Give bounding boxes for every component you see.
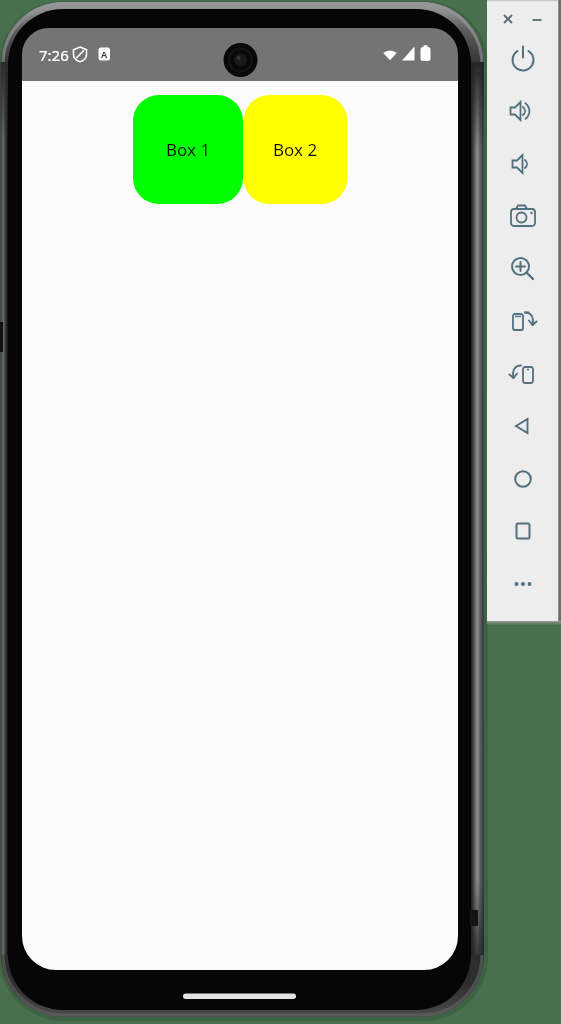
button[interactable]: [505, 93, 541, 129]
button[interactable]: [505, 198, 541, 234]
button[interactable]: [505, 303, 541, 339]
button[interactable]: [505, 513, 541, 549]
staticText: 7:26: [39, 45, 69, 65]
button[interactable]: [526, 8, 548, 30]
button[interactable]: [505, 461, 541, 497]
button[interactable]: [505, 146, 541, 182]
button[interactable]: [505, 356, 541, 392]
button[interactable]: [505, 408, 541, 444]
button[interactable]: [505, 41, 541, 77]
button[interactable]: [505, 251, 541, 287]
staticText: Box 2: [273, 138, 318, 161]
button[interactable]: Box 2: [243, 95, 347, 204]
button[interactable]: Box 1: [133, 95, 243, 204]
staticText: Box 1: [166, 138, 211, 161]
staticText: A: [101, 48, 108, 60]
button[interactable]: [505, 566, 541, 602]
button[interactable]: [497, 8, 519, 30]
